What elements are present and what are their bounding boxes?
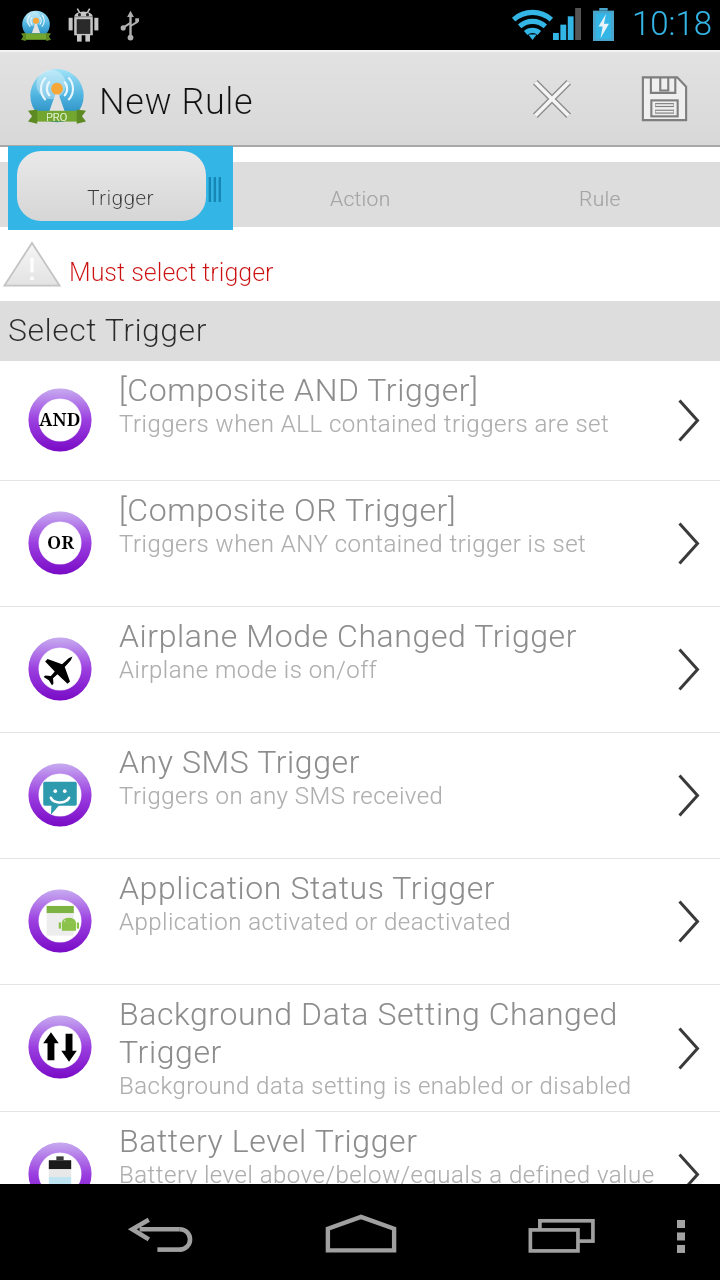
- staticText: Any SMS Trigger: [119, 743, 361, 781]
- button[interactable]: Home: [281, 1184, 441, 1280]
- staticText: PRO: [46, 111, 68, 124]
- button[interactable]: More options: [641, 1184, 720, 1280]
- staticText: Action: [330, 187, 391, 212]
- staticText: Trigger: [87, 186, 154, 211]
- staticText: Battery level above/below/equals a defin…: [119, 1161, 655, 1189]
- staticText: Background data setting is enabled or di…: [119, 1072, 632, 1100]
- staticText: New Rule: [99, 81, 254, 123]
- button[interactable]: Application Status Trigger: [0, 859, 720, 984]
- button[interactable]: Background Data Setting Changed Trigger: [0, 985, 720, 1111]
- staticText: Background Data Setting Changed Trigger: [119, 995, 679, 1071]
- button[interactable]: Recent apps: [482, 1184, 642, 1280]
- staticText: 10:18: [632, 4, 713, 43]
- staticText: Application Status Trigger: [119, 869, 496, 907]
- staticText: Triggers when ALL contained triggers are…: [119, 410, 610, 438]
- button[interactable]: Action: [240, 162, 480, 247]
- staticText: Rule: [579, 187, 621, 212]
- staticText: Triggers on any SMS received: [119, 782, 444, 810]
- staticText: Application activated or deactivated: [119, 908, 512, 936]
- staticText: [Composite AND Trigger]: [119, 371, 479, 409]
- button[interactable]: OR: [0, 481, 720, 606]
- button[interactable]: Save: [620, 50, 708, 147]
- button[interactable]: Airplane Mode Changed Trigger: [0, 607, 720, 732]
- staticText: Must select trigger: [69, 258, 274, 287]
- button[interactable]: Trigger: [8, 146, 233, 230]
- staticText: AND: [39, 407, 81, 432]
- staticText: Battery Level Trigger: [119, 1122, 418, 1160]
- staticText: Select Trigger: [8, 311, 207, 349]
- button[interactable]: Rule: [480, 162, 720, 247]
- staticText: Airplane mode is on/off: [119, 656, 378, 684]
- button[interactable]: AND: [0, 361, 720, 480]
- staticText: Triggers when ANY contained trigger is s…: [119, 530, 587, 558]
- staticText: OR: [47, 530, 74, 555]
- button[interactable]: Back: [84, 1184, 244, 1280]
- button[interactable]: Any SMS Trigger: [0, 733, 720, 858]
- button[interactable]: Cancel: [508, 50, 596, 147]
- button[interactable]: Battery Level Trigger: [0, 1112, 720, 1237]
- staticText: [Composite OR Trigger]: [119, 491, 457, 529]
- staticText: Airplane Mode Changed Trigger: [119, 617, 578, 655]
